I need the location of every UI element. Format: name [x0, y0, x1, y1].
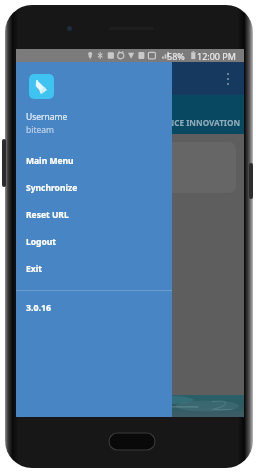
- staticText: Logout: [26, 236, 56, 248]
- staticText: Reset URL: [26, 209, 69, 221]
- staticText: 58%: [167, 50, 185, 62]
- button[interactable]: 3.0.16: [16, 297, 172, 318]
- button[interactable]: [26, 142, 236, 193]
- staticText: 12:00 PM: [197, 50, 236, 62]
- staticText: Synchronize: [26, 182, 78, 194]
- staticText: Main Menu: [26, 155, 74, 167]
- staticText: SCIENCE INNOVATION: [150, 117, 241, 128]
- staticText: Exit: [26, 263, 42, 275]
- staticText: Username: [26, 111, 68, 123]
- button[interactable]: App logo: [29, 74, 54, 99]
- button[interactable]: Reset URL: [16, 201, 172, 228]
- button[interactable]: Synchronize: [16, 174, 172, 201]
- button[interactable]: Main Menu: [16, 147, 172, 174]
- button[interactable]: More options: [227, 73, 229, 85]
- staticText: 3.0.16: [26, 302, 52, 314]
- button[interactable]: Logout: [16, 228, 172, 255]
- button[interactable]: Home: [108, 431, 156, 453]
- staticText: biteam: [26, 124, 54, 136]
- button[interactable]: Username: [16, 111, 172, 136]
- button[interactable]: Exit: [16, 255, 172, 282]
